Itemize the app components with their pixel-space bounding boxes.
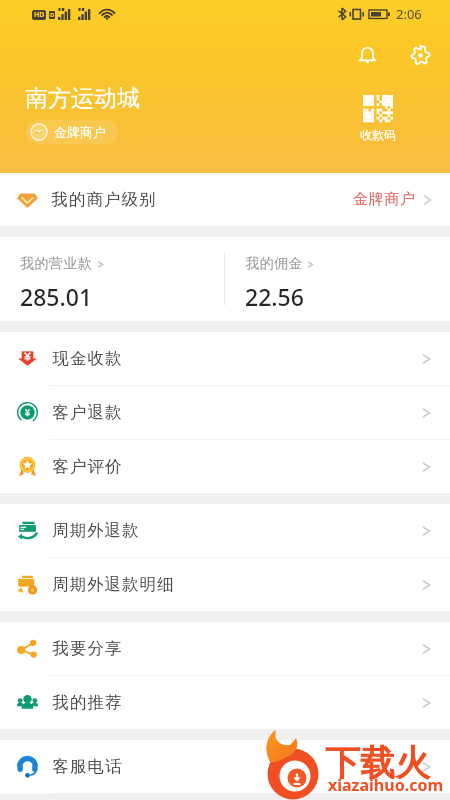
button[interactable]: 我的推荐 bbox=[0, 676, 450, 729]
staticText: D bbox=[50, 11, 55, 19]
staticText: 22.56 bbox=[245, 281, 304, 312]
staticText: 金牌商户 bbox=[353, 190, 416, 209]
staticText: 2:06 bbox=[396, 5, 422, 23]
button[interactable]: 周期外退款明细 bbox=[0, 558, 450, 611]
button[interactable]: Notifications bbox=[349, 37, 385, 73]
staticText: HD bbox=[34, 10, 45, 20]
staticText: 我的商户级别 bbox=[51, 189, 156, 210]
button[interactable]: 现金收款 bbox=[0, 332, 450, 385]
staticText: xiazaihuo.com bbox=[328, 774, 444, 796]
button[interactable]: 客服电话 bbox=[0, 740, 450, 793]
staticText: 我的佣金 bbox=[245, 255, 303, 273]
button[interactable]: 我的佣金 bbox=[225, 237, 450, 321]
staticText: 金牌商户 bbox=[54, 124, 106, 140]
staticText: 285.01 bbox=[20, 281, 93, 312]
staticText: 周期外退款明细 bbox=[52, 574, 175, 595]
staticText: 我要分享 bbox=[52, 638, 122, 659]
staticText: 我的营业款 bbox=[20, 255, 93, 273]
button[interactable]: 收款码 bbox=[355, 92, 401, 145]
staticText: 我的推荐 bbox=[52, 692, 122, 713]
staticText: 南方运动城 bbox=[25, 84, 140, 113]
staticText: 客户评价 bbox=[52, 456, 122, 477]
button[interactable]: 我的营业款 bbox=[0, 237, 224, 321]
staticText: 下载火 bbox=[325, 741, 430, 785]
button[interactable]: 客户评价 bbox=[0, 440, 450, 493]
button[interactable]: 我的商户级别 bbox=[0, 173, 450, 226]
staticText: 现金收款 bbox=[52, 348, 122, 369]
button[interactable]: 客户退款 bbox=[0, 386, 450, 439]
staticText: 周期外退款 bbox=[52, 520, 140, 541]
button[interactable]: 我要分享 bbox=[0, 622, 450, 675]
staticText: 收款码 bbox=[360, 127, 396, 142]
staticText: 客户退款 bbox=[52, 402, 122, 423]
button[interactable]: 金牌商户 bbox=[26, 120, 118, 144]
staticText: 客服电话 bbox=[52, 756, 122, 777]
button[interactable]: 周期外退款 bbox=[0, 504, 450, 557]
button[interactable]: Settings bbox=[402, 37, 438, 73]
